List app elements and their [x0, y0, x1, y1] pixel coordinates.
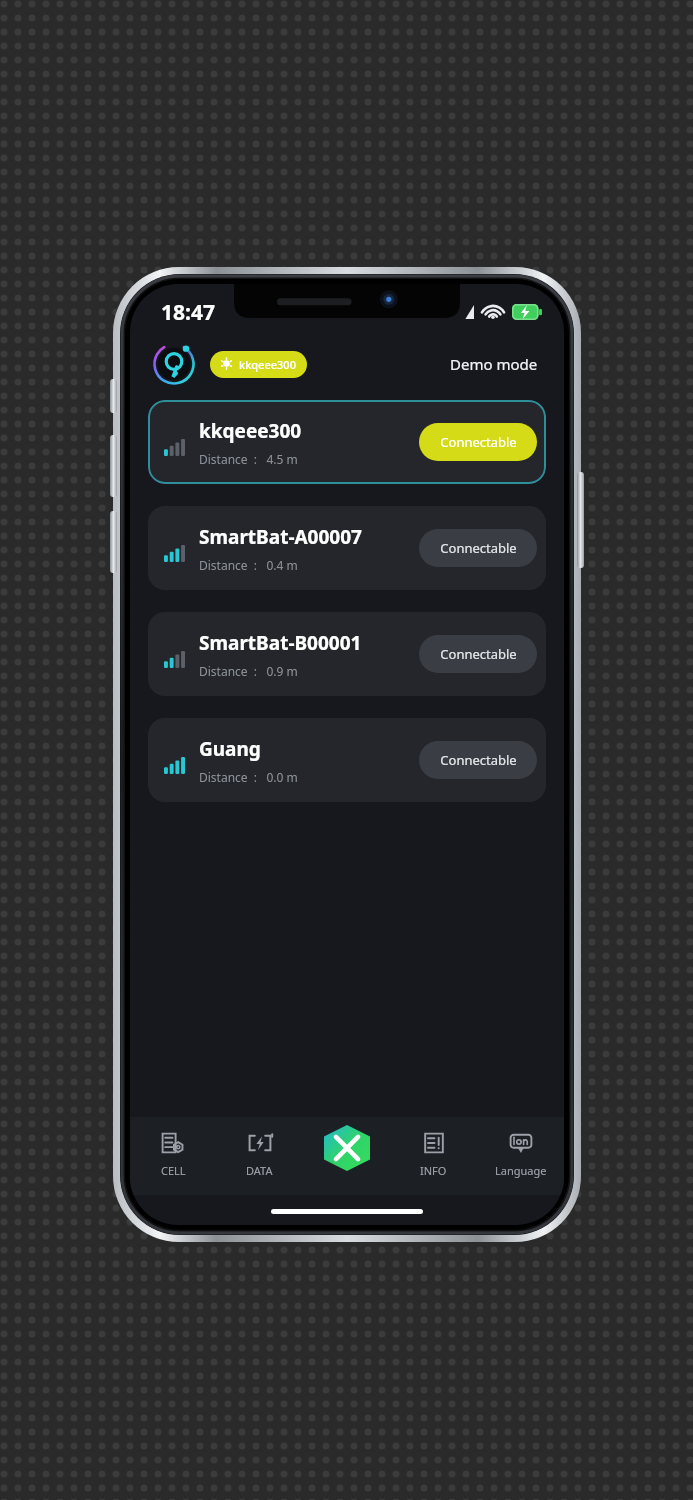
button[interactable]: SmartBat-B00001 [148, 612, 546, 696]
button[interactable]: kkqeee300 [210, 351, 307, 378]
staticText: INFO [420, 1163, 447, 1178]
staticText: Connectable [440, 751, 517, 769]
button[interactable]: CELL [130, 1117, 216, 1195]
button[interactable]: Close [324, 1125, 370, 1171]
button[interactable]: SmartBat-A00007 [148, 506, 546, 590]
staticText: Distance : 0.4 m [199, 557, 298, 573]
staticText: kkqeee300 [239, 357, 296, 372]
staticText: CELL [161, 1163, 186, 1178]
staticText: Connectable [440, 433, 517, 451]
button[interactable]: INFO [390, 1117, 477, 1195]
button[interactable]: Guang [148, 718, 546, 802]
staticText: Guang [199, 736, 261, 762]
button[interactable]: Connectable [419, 529, 537, 567]
staticText: SmartBat-A00007 [199, 524, 362, 550]
staticText: Connectable [440, 645, 517, 663]
staticText: SmartBat-B00001 [199, 630, 362, 656]
button[interactable]: Connectable [419, 423, 537, 461]
staticText: Distance : 0.0 m [199, 769, 298, 785]
staticText: Distance : 4.5 m [199, 451, 298, 467]
staticText: Language [495, 1163, 547, 1178]
staticText: Distance : 0.9 m [199, 663, 298, 679]
staticText: kkqeee300 [199, 418, 302, 444]
button[interactable]: kkqeee300 [148, 400, 546, 484]
staticText: 18:47 [161, 298, 215, 327]
staticText: Demo mode [450, 354, 538, 374]
button[interactable]: Demo mode [446, 350, 542, 378]
button[interactable]: Language [477, 1117, 564, 1195]
staticText: Connectable [440, 539, 517, 557]
staticText: DATA [246, 1163, 273, 1178]
button[interactable]: Connectable [419, 741, 537, 779]
button[interactable]: DATA [216, 1117, 303, 1195]
button[interactable]: Connectable [419, 635, 537, 673]
button[interactable]: App logo [152, 342, 196, 386]
